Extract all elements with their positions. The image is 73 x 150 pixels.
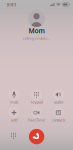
button[interactable]: keypad (25, 89, 47, 104)
button[interactable]: add (3, 107, 25, 122)
staticText: 9:41 (6, 1, 16, 8)
button[interactable]: mute (3, 89, 25, 104)
staticText: FaceTime (28, 117, 45, 122)
staticText: Mom (28, 26, 44, 35)
button[interactable]: audio (47, 89, 69, 104)
button[interactable]: contacts (47, 107, 69, 122)
button[interactable]: FaceTime (25, 107, 47, 122)
button[interactable]: End call (29, 129, 44, 144)
staticText: mute (9, 99, 18, 104)
staticText: calling mobile… (23, 35, 50, 41)
staticText: keypad (30, 99, 42, 104)
staticText: audio (54, 99, 63, 104)
staticText: add (11, 117, 17, 122)
button[interactable]: Keypad (7, 129, 20, 142)
staticText: contacts (51, 117, 65, 122)
